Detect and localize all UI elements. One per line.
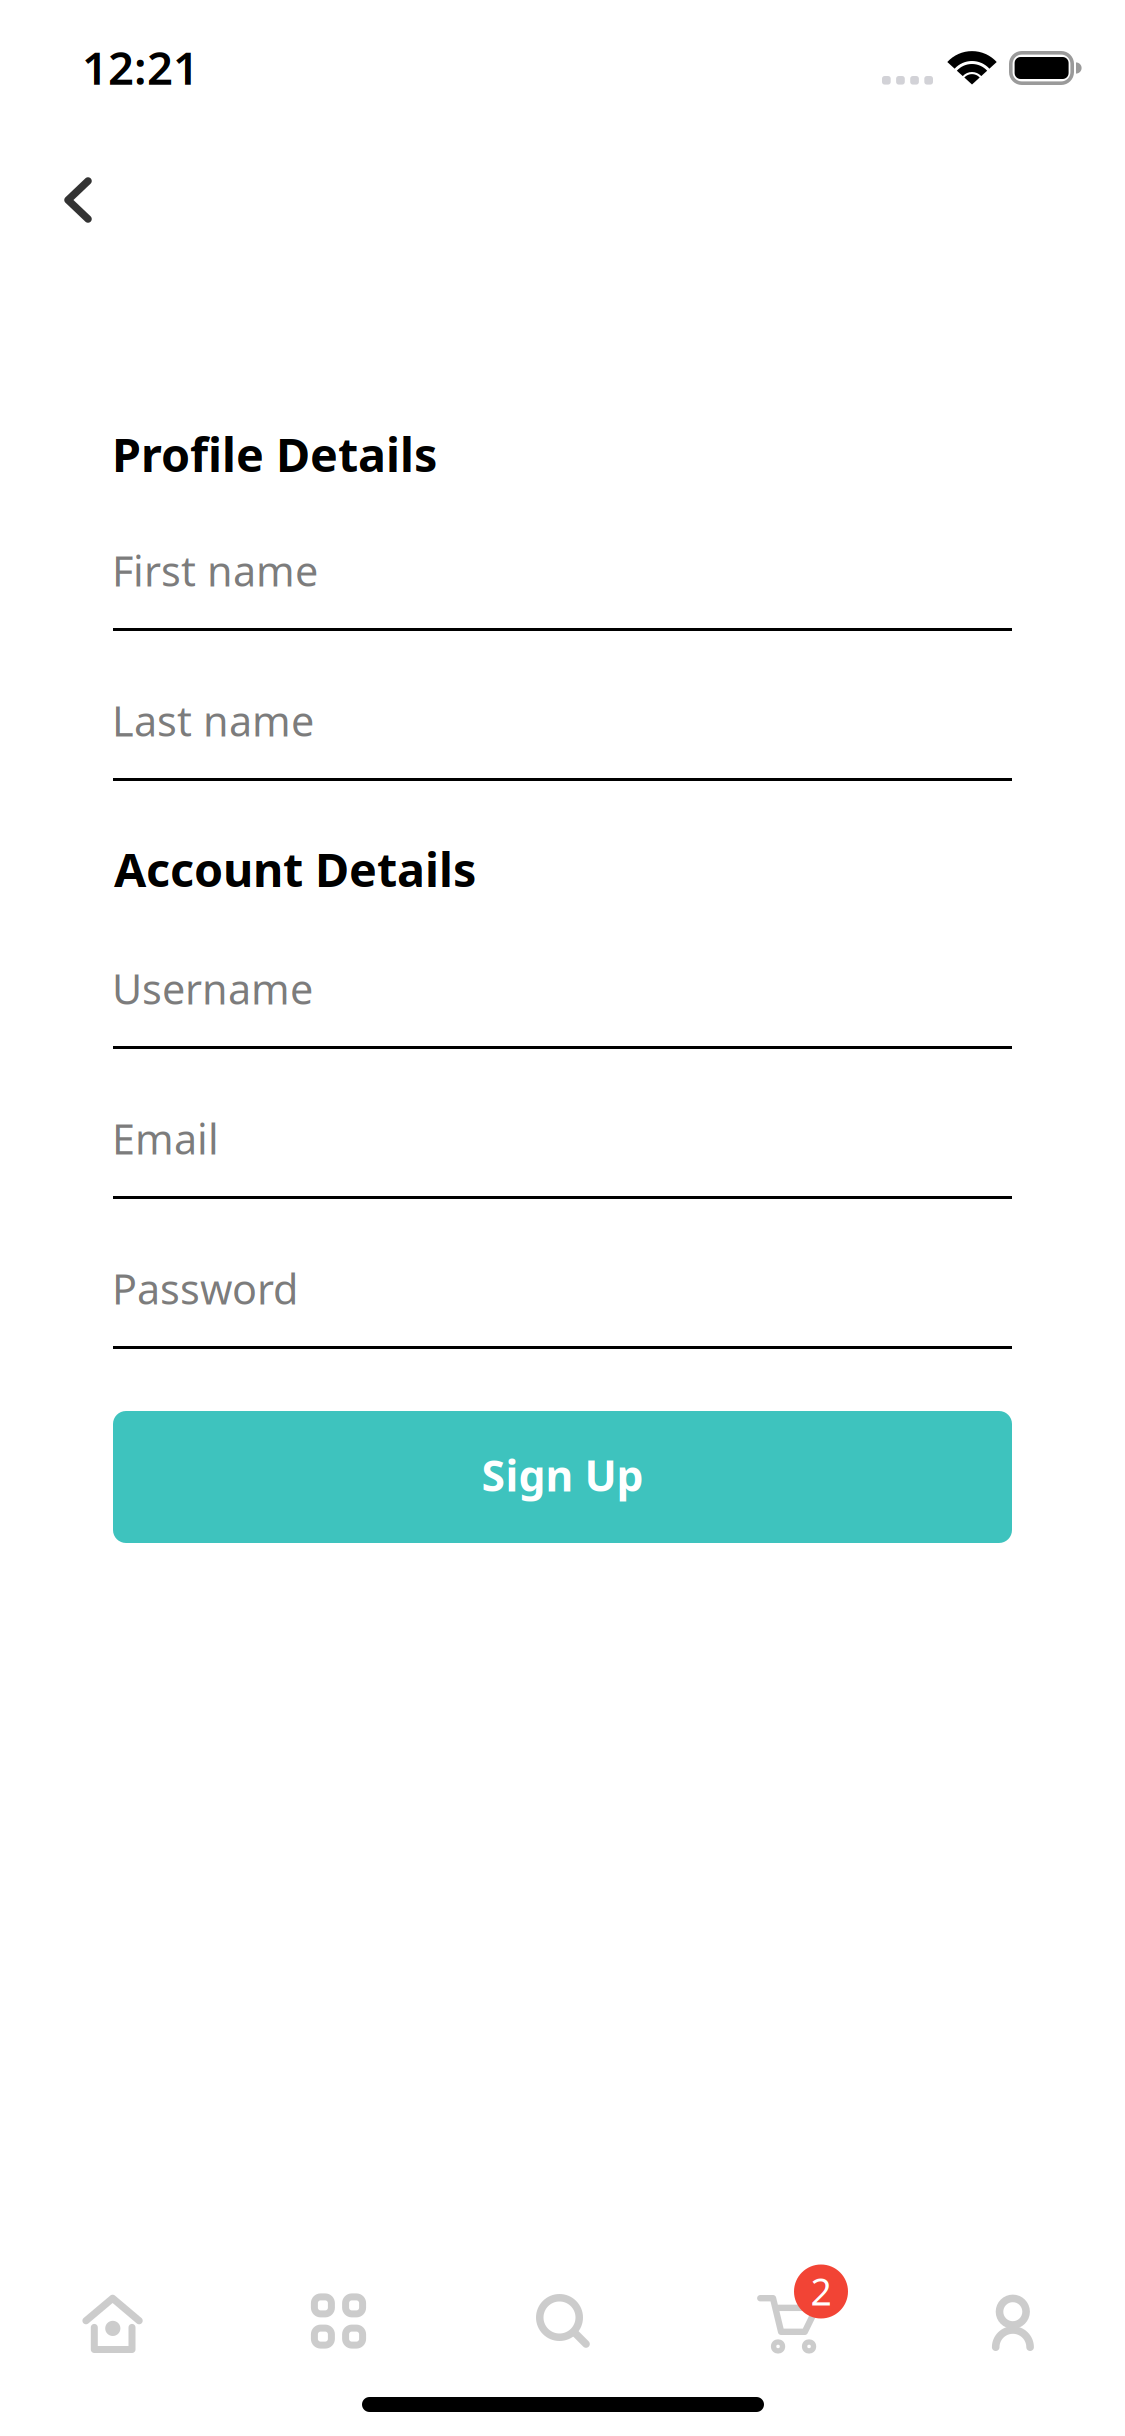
staticText: 12:21	[82, 37, 199, 97]
staticText: Profile Details	[112, 423, 437, 485]
button[interactable]: Categories	[225, 2251, 450, 2398]
button[interactable]: Back	[46, 134, 178, 266]
button[interactable]: Search	[450, 2251, 675, 2398]
staticText: Username	[112, 961, 313, 1016]
staticText: Sign Up	[481, 1447, 643, 1503]
button[interactable]: Email	[113, 1111, 1012, 1221]
staticText: Password	[112, 1261, 298, 1316]
staticText: 2	[810, 2266, 831, 2316]
button[interactable]: Profile	[900, 2251, 1125, 2398]
staticText: Email	[112, 1111, 219, 1166]
staticText: First name	[112, 543, 318, 598]
button[interactable]: Password	[113, 1261, 1012, 1371]
button[interactable]: Last name	[113, 693, 1012, 803]
button[interactable]: Sign Up	[113, 1411, 1012, 1543]
button[interactable]: Home	[0, 2251, 225, 2398]
staticText: Account Details	[114, 838, 476, 900]
button[interactable]: Cart, 2 items	[675, 2251, 900, 2398]
button[interactable]: First name	[113, 543, 1012, 653]
button[interactable]: Username	[113, 961, 1012, 1071]
staticText: Last name	[112, 693, 314, 748]
